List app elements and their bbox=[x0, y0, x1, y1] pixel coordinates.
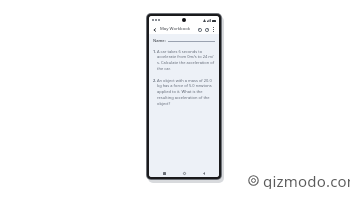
button[interactable]: Back bbox=[151, 26, 158, 33]
staticText: 1. bbox=[153, 49, 157, 54]
staticText: A car takes 6 seconds to accelerate from… bbox=[157, 49, 215, 72]
button[interactable]: More options bbox=[210, 26, 217, 33]
button[interactable]: Back bbox=[199, 169, 209, 177]
staticText: Name: bbox=[153, 38, 166, 43]
staticText: An object with a mass of 20.0 kg has a f… bbox=[157, 78, 215, 107]
button[interactable]: Undo bbox=[196, 26, 203, 33]
button[interactable]: Redo bbox=[203, 26, 210, 33]
button[interactable]: Home bbox=[179, 169, 189, 177]
staticText: 2. bbox=[153, 78, 157, 83]
staticText: gizmodo.com bbox=[263, 171, 350, 189]
button[interactable]: Recent apps bbox=[159, 169, 169, 177]
staticText: May Workbook bbox=[160, 26, 196, 32]
